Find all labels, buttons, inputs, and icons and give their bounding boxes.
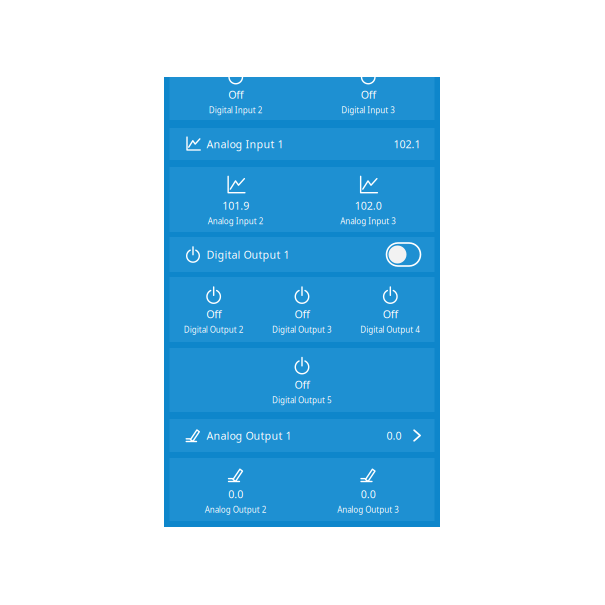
staticText: 102.1	[393, 137, 420, 151]
staticText: Analog Output 3	[337, 504, 399, 515]
staticText: 0.0	[228, 487, 243, 501]
button[interactable]: 102.0	[302, 167, 434, 232]
staticText: Analog Input 2	[208, 216, 264, 226]
staticText: Digital Input 3	[341, 105, 395, 115]
staticText: Analog Input 3	[340, 216, 396, 226]
button[interactable]: 101.9	[169, 167, 302, 232]
staticText: 101.9	[222, 199, 249, 213]
button[interactable]: Off	[302, 56, 434, 120]
staticText: Digital Output 5	[272, 395, 332, 405]
button[interactable]: 0.0	[169, 458, 302, 521]
button[interactable]: Off	[169, 56, 302, 120]
staticText: Off	[206, 307, 221, 321]
staticText: Digital Input 2	[209, 105, 263, 115]
staticText: 102.0	[355, 199, 382, 213]
staticText: Off	[383, 307, 398, 321]
button[interactable]: Off	[346, 277, 434, 342]
staticText: 0.0	[361, 487, 376, 501]
staticText: 0.0	[386, 428, 401, 443]
button[interactable]: Off	[258, 277, 346, 342]
staticText: Digital Output 1	[206, 247, 289, 262]
staticText: Off	[361, 88, 376, 102]
button[interactable]: Analog Input 1	[169, 128, 434, 160]
button[interactable]: 0.0	[302, 458, 434, 521]
staticText: Digital Output 3	[272, 324, 332, 335]
button[interactable]: Off	[169, 348, 434, 412]
staticText: Analog Output 1	[206, 428, 291, 443]
button[interactable]: Analog Output 1	[169, 419, 434, 452]
staticText: Analog Output 2	[205, 504, 267, 515]
staticText: Analog Input 1	[206, 137, 283, 151]
staticText: Off	[294, 378, 309, 392]
staticText: Digital Output 2	[184, 324, 244, 335]
button[interactable]: Off	[169, 277, 258, 342]
staticText: Off	[294, 307, 309, 321]
button[interactable]: Digital Output 1	[169, 237, 434, 272]
staticText: Digital Output 4	[360, 324, 420, 335]
staticText: Off	[228, 88, 243, 102]
